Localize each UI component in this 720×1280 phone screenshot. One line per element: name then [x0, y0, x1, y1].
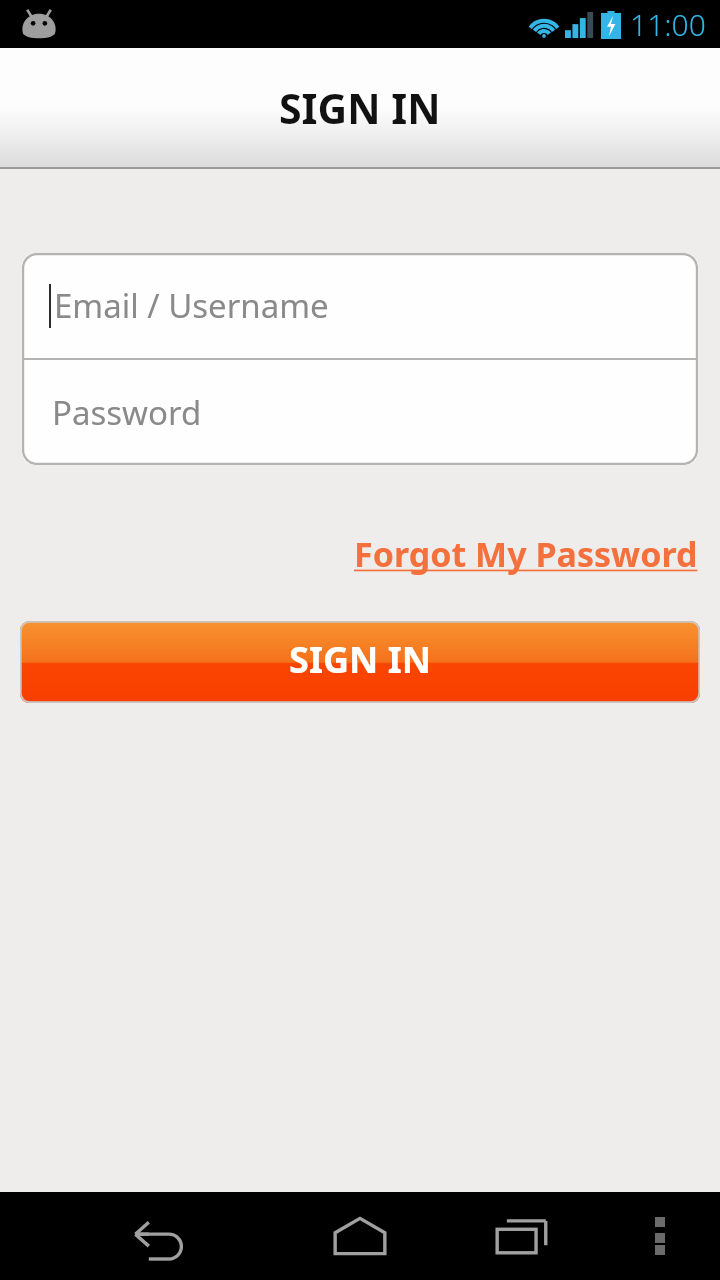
- button[interactable]: Back: [120, 1196, 200, 1276]
- button[interactable]: Home: [320, 1196, 400, 1276]
- staticText: Email / Username: [54, 283, 329, 328]
- staticText: SIGN IN: [289, 635, 431, 684]
- staticText: Forgot My Password: [354, 531, 698, 577]
- button[interactable]: Email / Username: [22, 253, 698, 358]
- button[interactable]: Forgot My Password: [352, 527, 700, 581]
- button[interactable]: Password: [22, 360, 698, 465]
- button[interactable]: More options: [628, 1204, 692, 1268]
- staticText: Password: [52, 390, 202, 435]
- button[interactable]: Recent apps: [482, 1196, 562, 1276]
- staticText: SIGN IN: [279, 80, 441, 136]
- staticText: 11:00: [630, 4, 706, 45]
- button[interactable]: SIGN IN: [20, 621, 700, 703]
